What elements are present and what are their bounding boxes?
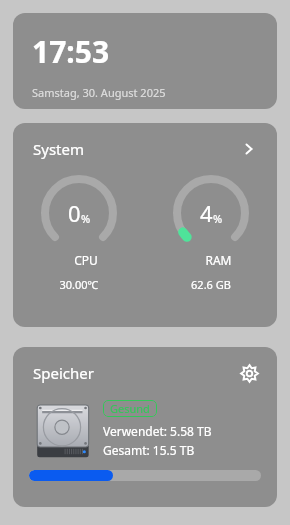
staticText: 4 <box>200 198 213 228</box>
other: Open system details <box>239 139 259 159</box>
staticText: Gesamt: 15.5 TB <box>103 442 195 458</box>
staticText: Speicher <box>33 363 94 383</box>
staticText: % <box>213 211 223 226</box>
button[interactable]: 17:53 <box>13 13 277 109</box>
staticText: 62.6 GB <box>191 277 231 292</box>
staticText: % <box>81 211 91 226</box>
button[interactable]: Storage settings <box>237 361 261 385</box>
button[interactable]: System <box>13 123 277 175</box>
staticText: Samstag, 30. August 2025 <box>32 85 166 100</box>
staticText: 30.00℃ <box>59 277 99 292</box>
staticText: CPU <box>74 252 98 268</box>
staticText: Gesund <box>110 401 150 416</box>
staticText: Verwendet: 5.58 TB <box>103 423 212 439</box>
staticText: 0 <box>68 198 81 228</box>
staticText: System <box>33 139 84 159</box>
staticText: 17:53 <box>32 31 110 72</box>
staticText: RAM <box>205 252 232 268</box>
